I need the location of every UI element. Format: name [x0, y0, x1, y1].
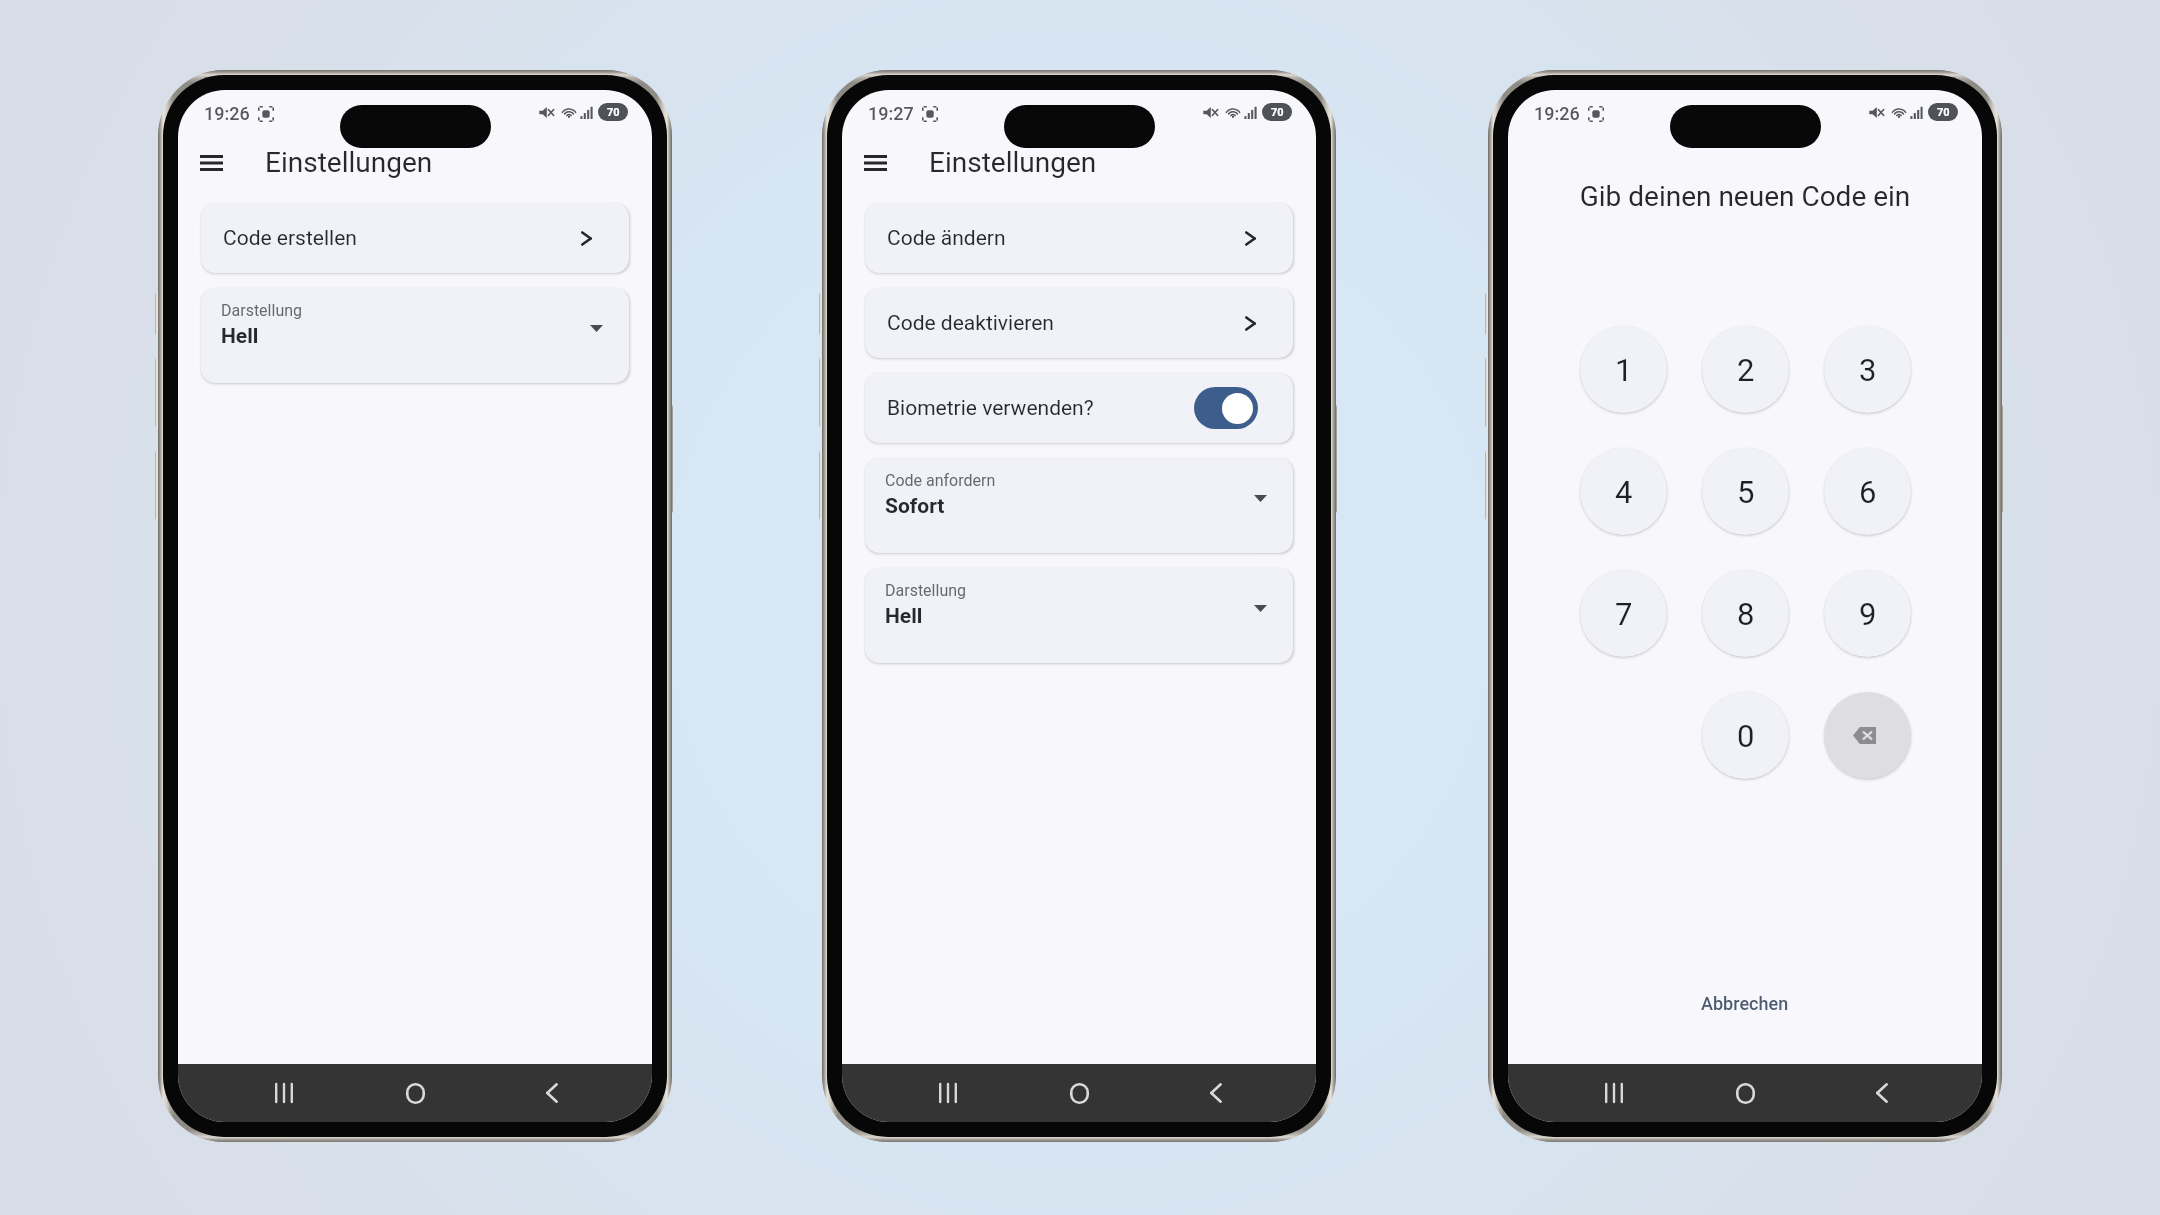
staticText: 70: [1271, 106, 1284, 119]
button[interactable]: 8: [1702, 570, 1789, 657]
button[interactable]: 3: [1824, 326, 1911, 413]
staticText: 70: [607, 106, 620, 119]
staticText: Code erstellen: [223, 226, 357, 251]
button[interactable]: Back: [1846, 1064, 1906, 1122]
button[interactable]: 0: [1702, 692, 1789, 779]
button[interactable]: 1: [1580, 326, 1667, 413]
staticText: Code anfordern: [885, 471, 996, 490]
button[interactable]: Code anfordern: [865, 458, 1293, 553]
button[interactable]: Home: [385, 1064, 445, 1122]
staticText: Hell: [885, 604, 923, 629]
staticText: 1: [1615, 352, 1633, 388]
staticText: Biometrie verwenden?: [887, 396, 1094, 421]
button[interactable]: Darstellung: [865, 568, 1293, 663]
staticText: Code deaktivieren: [887, 311, 1054, 336]
button[interactable]: Abbrechen: [1689, 985, 1801, 1022]
staticText: 8: [1737, 596, 1755, 632]
button[interactable]: Recent apps: [918, 1064, 978, 1122]
button[interactable]: Recent apps: [254, 1064, 314, 1122]
staticText: 0: [1737, 718, 1755, 754]
button[interactable]: Biometrie verwenden?: [865, 373, 1293, 443]
button[interactable]: 9: [1824, 570, 1911, 657]
staticText: 2: [1737, 352, 1755, 388]
staticText: 7: [1615, 596, 1633, 632]
button[interactable]: Menu: [860, 148, 890, 178]
button[interactable]: 4: [1580, 448, 1667, 535]
staticText: Sofort: [885, 494, 945, 519]
button[interactable]: Home: [1715, 1064, 1775, 1122]
button[interactable]: 5: [1702, 448, 1789, 535]
button[interactable]: Home: [1049, 1064, 1109, 1122]
staticText: Hell: [221, 324, 259, 349]
button[interactable]: Menu: [196, 148, 226, 178]
button[interactable]: Code erstellen: [201, 203, 629, 273]
button[interactable]: Recent apps: [1584, 1064, 1644, 1122]
staticText: 19:26: [1534, 103, 1580, 124]
button[interactable]: 7: [1580, 570, 1667, 657]
staticText: Darstellung: [221, 301, 303, 320]
staticText: Einstellungen: [929, 146, 1097, 179]
staticText: 9: [1859, 596, 1877, 632]
staticText: Gib deinen neuen Code ein: [1508, 180, 1982, 213]
button[interactable]: Back: [1180, 1064, 1240, 1122]
staticText: 5: [1737, 474, 1755, 510]
staticText: Code ändern: [887, 226, 1006, 251]
button[interactable]: Darstellung: [201, 288, 629, 383]
staticText: 70: [1937, 106, 1950, 119]
staticText: 19:27: [868, 103, 914, 124]
button[interactable]: Back: [516, 1064, 576, 1122]
button[interactable]: Code ändern: [865, 203, 1293, 273]
staticText: 3: [1859, 352, 1877, 388]
staticText: Einstellungen: [265, 146, 433, 179]
staticText: 19:26: [204, 103, 250, 124]
staticText: 4: [1615, 474, 1633, 510]
button[interactable]: 6: [1824, 448, 1911, 535]
button[interactable]: 2: [1702, 326, 1789, 413]
staticText: Darstellung: [885, 581, 967, 600]
staticText: 6: [1859, 474, 1877, 510]
button[interactable]: Backspace: [1824, 692, 1911, 779]
button[interactable]: Code deaktivieren: [865, 288, 1293, 358]
staticText: Abbrechen: [1701, 993, 1789, 1014]
